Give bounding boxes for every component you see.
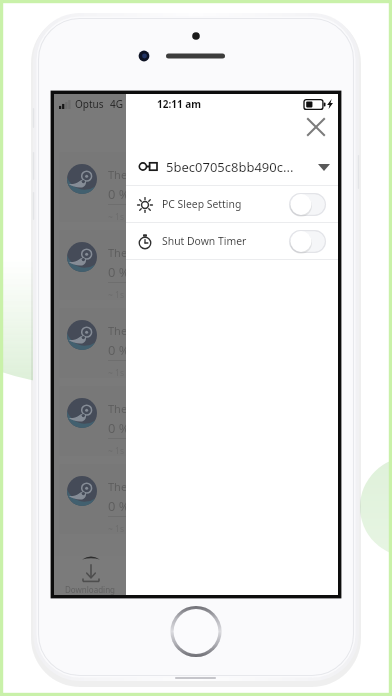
staticText: Shut Down Timer xyxy=(162,234,247,248)
staticText: 4G xyxy=(110,97,123,111)
staticText: The Witcher 3: Wild Hunt xyxy=(108,167,237,182)
button[interactable]: The Witcher 3: Wild Hunt xyxy=(59,386,333,456)
staticText: ~ 1s left xyxy=(108,289,140,300)
staticText: ~ 1s left xyxy=(108,211,140,222)
staticText: The Witcher 3: Wild Hunt xyxy=(108,323,237,338)
staticText: The Witcher 3: Wild Hunt xyxy=(108,479,237,494)
staticText: 0 % xyxy=(108,185,130,203)
staticText: The Witcher 3: Wild Hunt xyxy=(108,245,237,260)
staticText: 0 % xyxy=(108,497,130,515)
button[interactable]: Downloading xyxy=(54,556,129,595)
button[interactable]: The Witcher 3: Wild Hunt xyxy=(59,464,333,534)
staticText: Downloading xyxy=(65,584,115,595)
button[interactable]: 5bec0705c8bb490c... xyxy=(126,148,339,185)
staticText: 0 % xyxy=(108,263,130,281)
staticText: PC Sleep Setting xyxy=(162,197,242,211)
staticText: The Witcher 3: Wild Hunt xyxy=(108,401,237,416)
button[interactable]: Close xyxy=(300,111,332,143)
button[interactable]: Toggle xyxy=(289,193,326,216)
staticText: ~ 1s left xyxy=(108,523,140,534)
staticText: ~ 1s left xyxy=(108,367,140,378)
staticText: ~ 1s left xyxy=(108,445,140,456)
staticText: 12:11 am xyxy=(157,97,202,111)
button[interactable]: The Witcher 3: Wild Hunt xyxy=(59,152,333,222)
staticText: Optus xyxy=(75,97,104,111)
button[interactable]: The Witcher 3: Wild Hunt xyxy=(59,308,333,378)
staticText: 0 % xyxy=(108,341,130,359)
button[interactable]: The Witcher 3: Wild Hunt xyxy=(59,230,333,300)
button[interactable]: Shut Down Timer xyxy=(126,223,339,259)
staticText: 5bec0705c8bb490c... xyxy=(166,158,294,176)
button[interactable]: Toggle xyxy=(289,230,326,253)
button[interactable]: PC Sleep Setting xyxy=(126,186,339,222)
staticText: 0 % xyxy=(108,419,130,437)
